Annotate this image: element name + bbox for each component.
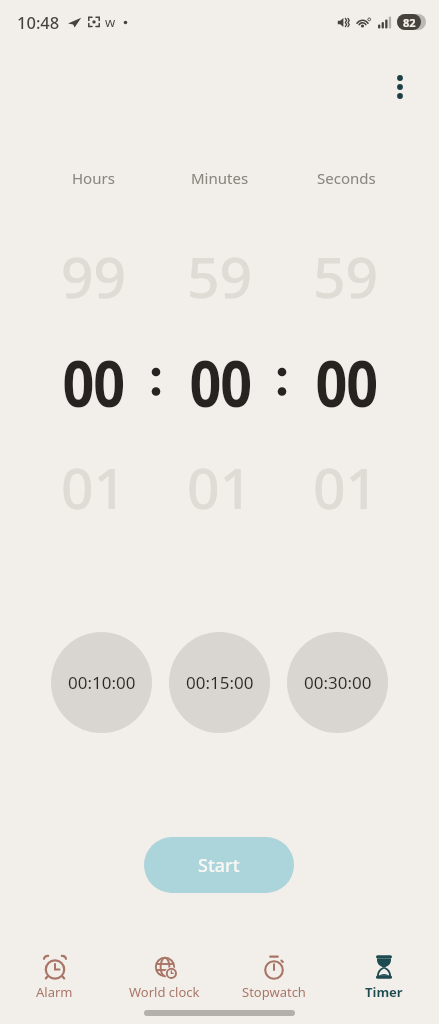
staticText: 59 <box>313 237 379 315</box>
staticText: 01 <box>61 448 127 526</box>
staticText: World clock <box>129 983 200 1001</box>
staticText: Stopwatch <box>242 983 306 1001</box>
button[interactable]: Start <box>144 837 294 893</box>
staticText: 00:15:00 <box>186 671 254 694</box>
staticText: Start <box>198 853 240 878</box>
button[interactable]: Stopwatch <box>242 954 306 1001</box>
staticText: w <box>105 13 116 31</box>
button[interactable]: 00:15:00 <box>169 632 270 733</box>
staticText: 00 <box>190 339 251 426</box>
staticText: 10:48 <box>17 11 60 33</box>
staticText: Hours <box>72 168 115 188</box>
staticText: Seconds <box>317 168 376 188</box>
button[interactable]: Alarm <box>36 954 73 1001</box>
staticText: Minutes <box>191 168 249 188</box>
staticText: Alarm <box>36 983 73 1001</box>
button[interactable]: Timer <box>365 954 403 1001</box>
staticText: 00 <box>63 339 124 426</box>
button[interactable] <box>384 64 416 108</box>
staticText: 99 <box>61 237 127 315</box>
staticText: 01 <box>187 448 253 526</box>
staticText: 59 <box>187 237 253 315</box>
button[interactable]: 00:10:00 <box>51 632 152 733</box>
staticText: 00 <box>316 339 377 426</box>
staticText: 01 <box>313 448 379 526</box>
button[interactable]: 00:30:00 <box>287 632 388 733</box>
staticText: 00:30:00 <box>304 671 372 694</box>
staticText: 00:10:00 <box>68 671 136 694</box>
staticText: Timer <box>365 983 403 1001</box>
button[interactable]: World clock <box>129 954 200 1001</box>
staticText: 82 <box>403 15 416 30</box>
